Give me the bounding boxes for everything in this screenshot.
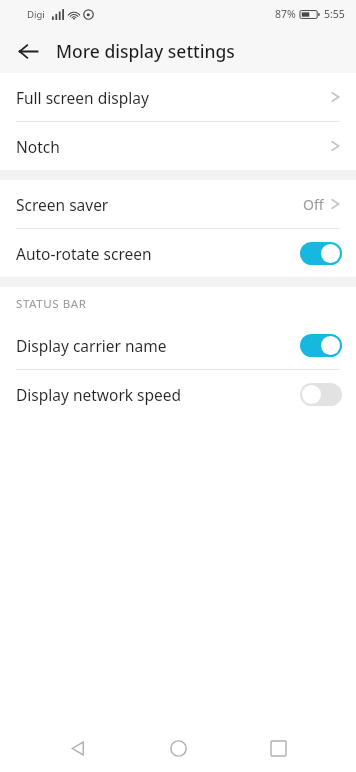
button[interactable]: Toggle on bbox=[300, 334, 342, 357]
staticText: 87% bbox=[275, 7, 296, 21]
button[interactable]: Recent apps bbox=[250, 725, 306, 772]
button[interactable]: Display carrier name bbox=[0, 321, 356, 369]
staticText: Screen saver bbox=[16, 194, 303, 215]
staticText: Display network speed bbox=[16, 384, 300, 405]
button[interactable]: Full screen display bbox=[0, 73, 356, 121]
staticText: Digi bbox=[27, 8, 45, 21]
button[interactable]: Back bbox=[50, 725, 106, 772]
staticText: Full screen display bbox=[16, 87, 330, 108]
button[interactable]: Home bbox=[150, 725, 206, 772]
staticText: Auto-rotate screen bbox=[16, 243, 300, 264]
staticText: More display settings bbox=[56, 39, 235, 63]
staticText: Notch bbox=[16, 136, 330, 157]
button[interactable]: Toggle off bbox=[300, 383, 342, 406]
button[interactable]: Toggle on bbox=[300, 242, 342, 265]
button[interactable]: Notch bbox=[0, 122, 356, 170]
button[interactable]: Back bbox=[8, 31, 48, 71]
button[interactable]: Auto-rotate screen bbox=[0, 229, 356, 277]
staticText: Off bbox=[303, 195, 324, 214]
button[interactable]: Screen saver bbox=[0, 180, 356, 228]
staticText: Display carrier name bbox=[16, 335, 300, 356]
staticText: 5:55 bbox=[324, 7, 345, 21]
button[interactable]: Display network speed bbox=[0, 370, 356, 418]
staticText: STATUS BAR bbox=[16, 296, 87, 312]
